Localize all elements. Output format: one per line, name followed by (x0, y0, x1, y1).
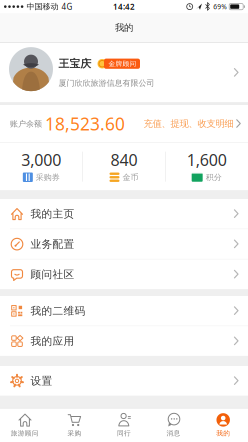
staticText: 厦门欣欣旅游信息有限公司 (58, 78, 154, 88)
staticText: 业务配置 (30, 238, 74, 251)
button[interactable]: 旅游顾问 (0, 409, 50, 442)
staticText: 消息 (167, 429, 181, 437)
button[interactable]: 充值、提现、收支明细 (143, 118, 248, 129)
staticText: 4G (61, 1, 72, 12)
staticText: 王宝庆 (58, 57, 91, 70)
button[interactable]: 我的二维码 (0, 296, 248, 326)
staticText: 1,600 (187, 149, 227, 170)
button[interactable]: 1,600 (165, 143, 248, 190)
staticText: 840 (110, 149, 137, 170)
button[interactable]: 3,000 (0, 143, 83, 190)
staticText: 账户余额 (10, 119, 42, 129)
staticText: 18,523.60 (45, 112, 125, 135)
button[interactable]: 同行 (99, 409, 149, 442)
staticText: 我的主页 (30, 207, 74, 220)
staticText: 旅游顾问 (11, 429, 39, 437)
staticText: 69% (213, 2, 227, 11)
staticText: 顾问社区 (30, 268, 74, 281)
staticText: 金牌顾问 (108, 60, 136, 68)
button[interactable]: 采购 (50, 409, 99, 442)
button[interactable]: 消息 (149, 409, 198, 442)
button[interactable]: 840 (83, 143, 165, 190)
staticText: 充值、提现、收支明细 (143, 118, 233, 129)
button[interactable]: 我的应用 (0, 326, 248, 356)
button[interactable]: 业务配置 (0, 229, 248, 259)
staticText: 采购券 (36, 172, 60, 182)
button[interactable]: 顾问社区 (0, 260, 248, 289)
button[interactable]: 王宝庆 (0, 43, 248, 102)
button[interactable]: 设置 (0, 366, 248, 396)
staticText: 14:42 (113, 1, 135, 12)
staticText: 同行 (117, 429, 131, 437)
staticText: 我的 (216, 429, 230, 437)
staticText: 3,000 (21, 149, 61, 170)
button[interactable]: 我的 (198, 409, 248, 442)
staticText: 我的 (115, 22, 133, 33)
staticText: 我的应用 (30, 335, 74, 348)
staticText: 设置 (30, 374, 52, 387)
staticText: 积分 (206, 172, 222, 182)
staticText: 采购 (67, 429, 81, 437)
button[interactable]: 我的主页 (0, 199, 248, 229)
staticText: 金币 (122, 172, 138, 182)
staticText: 我的二维码 (30, 304, 85, 317)
staticText: 中国移动 (26, 2, 58, 11)
